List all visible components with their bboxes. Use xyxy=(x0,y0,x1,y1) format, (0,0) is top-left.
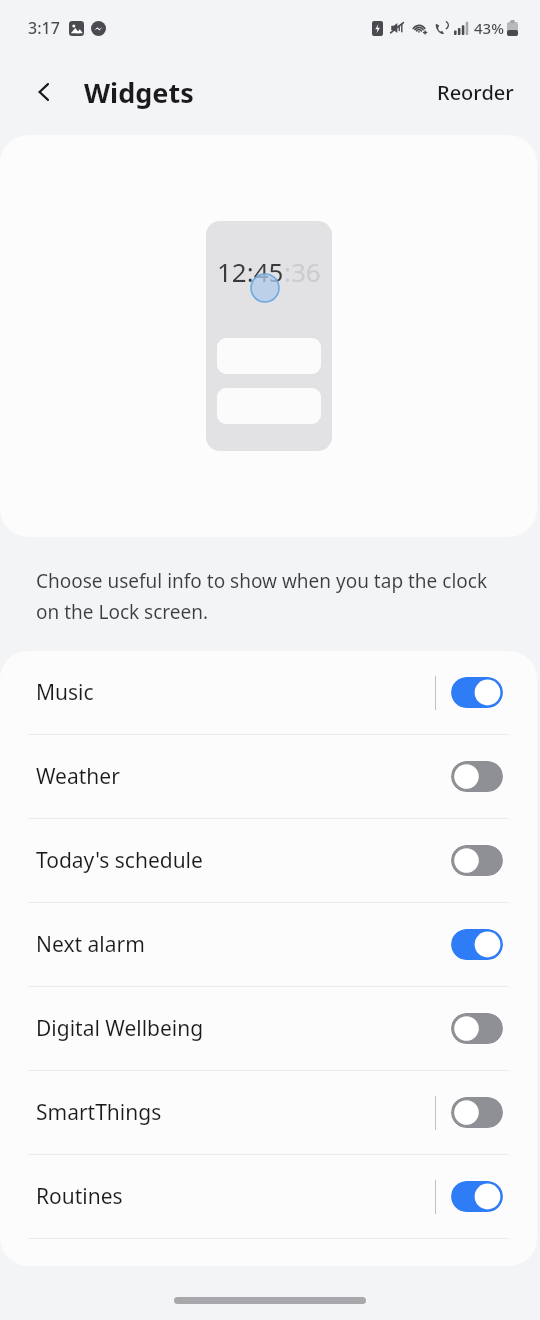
button[interactable]: SmartThings toggle xyxy=(451,1097,503,1128)
button[interactable]: Routines xyxy=(0,1155,537,1238)
staticText: Choose useful info to show when you tap … xyxy=(36,568,496,624)
button[interactable]: Music xyxy=(0,651,537,734)
button[interactable]: Weather toggle xyxy=(451,761,503,792)
button[interactable]: Digital Wellbeing toggle xyxy=(451,1013,503,1044)
button[interactable]: Back xyxy=(22,70,66,114)
button[interactable]: Next alarm toggle xyxy=(451,929,503,960)
staticText: 12:45 xyxy=(217,254,284,289)
button[interactable]: Music toggle xyxy=(451,677,503,708)
button[interactable]: Digital Wellbeing xyxy=(0,987,537,1070)
staticText: SmartThings xyxy=(36,1098,162,1127)
staticText: Digital Wellbeing xyxy=(36,1014,204,1043)
staticText: 3:17 xyxy=(28,17,60,39)
button[interactable]: Today's schedule toggle xyxy=(451,845,503,876)
staticText: :36 xyxy=(284,254,321,289)
staticText: Music xyxy=(36,678,94,707)
button[interactable]: Weather xyxy=(0,735,537,818)
button[interactable]: Today's schedule xyxy=(0,819,537,902)
staticText: Next alarm xyxy=(36,930,145,959)
button[interactable]: Routines toggle xyxy=(451,1181,503,1212)
staticText: Routines xyxy=(36,1182,123,1211)
button[interactable]: SmartThings xyxy=(0,1071,537,1154)
staticText: Widgets xyxy=(84,74,194,111)
staticText: Today's schedule xyxy=(36,846,203,875)
button[interactable]: Reorder xyxy=(427,71,524,114)
staticText: 43% xyxy=(474,18,504,38)
staticText: Reorder xyxy=(437,79,514,106)
button[interactable]: Next alarm xyxy=(0,903,537,986)
staticText: Weather xyxy=(36,762,120,791)
